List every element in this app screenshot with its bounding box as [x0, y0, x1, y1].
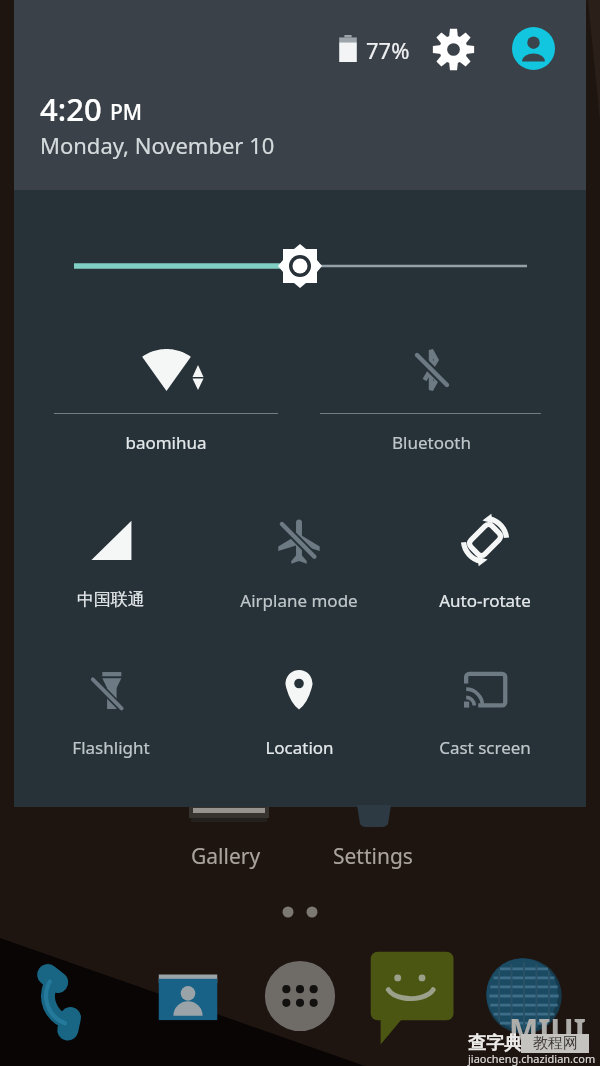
staticText: jiaocheng.chazidian.com [468, 1051, 596, 1066]
staticText: Auto-rotate [439, 589, 531, 612]
button[interactable]: baomihua [76, 339, 256, 449]
staticText: 中国联通 [77, 589, 145, 610]
staticText: baomihua [125, 431, 207, 454]
button[interactable]: 中国联通 [21, 506, 201, 616]
staticText: 教程网 [533, 1034, 578, 1053]
button[interactable]: Settings [432, 28, 475, 71]
staticText: Airplane mode [240, 589, 358, 612]
staticText: Flashlight [72, 736, 150, 759]
staticText: MIUI [509, 1008, 586, 1050]
staticText: Location [265, 736, 334, 759]
button[interactable]: Flashlight [21, 654, 201, 764]
button[interactable]: Bluetooth [341, 339, 521, 449]
staticText: Monday, November 10 [40, 130, 275, 160]
button[interactable]: Contacts [145, 953, 231, 1039]
button[interactable]: All apps [261, 957, 339, 1035]
button[interactable]: Browser [483, 955, 565, 1037]
button[interactable]: User profile [512, 27, 555, 70]
staticText: Cast screen [439, 736, 531, 759]
staticText: Settings [333, 842, 413, 871]
staticText: 4:20 [40, 88, 102, 130]
staticText: Gallery [191, 842, 261, 871]
staticText: Bluetooth [392, 431, 471, 454]
button[interactable]: Brightness [60, 242, 540, 290]
button[interactable]: Auto-rotate [395, 506, 575, 616]
button[interactable]: Phone [30, 951, 120, 1041]
button[interactable]: Airplane mode [209, 506, 389, 616]
button[interactable]: Cast screen [395, 654, 575, 764]
button[interactable]: Location [209, 654, 389, 764]
staticText: 77% [366, 35, 410, 65]
staticText: PM [110, 98, 143, 127]
staticText: 查字典 [468, 1032, 522, 1055]
button[interactable]: Messaging [368, 950, 458, 1040]
